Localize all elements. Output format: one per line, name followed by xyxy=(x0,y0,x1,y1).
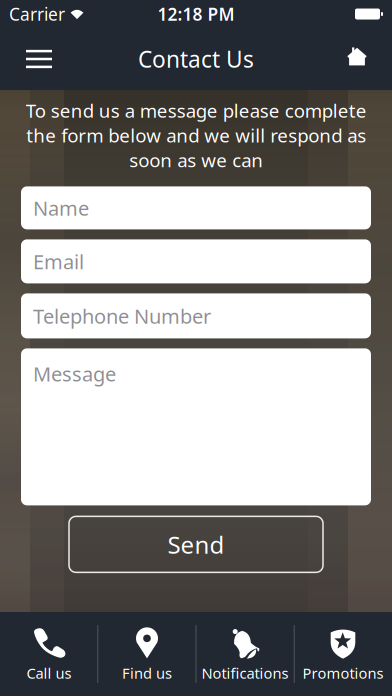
button[interactable]: Send xyxy=(69,516,323,572)
button[interactable]: Find us xyxy=(98,612,196,696)
staticText: Send xyxy=(167,528,224,560)
staticText: Email xyxy=(33,248,84,275)
staticText: Telephone Number xyxy=(33,303,211,329)
staticText: Notifications xyxy=(201,663,288,683)
button[interactable]: Call us xyxy=(0,612,98,696)
button[interactable]: Home xyxy=(331,33,383,85)
button[interactable]: Notifications xyxy=(196,612,294,696)
button[interactable]: Menu xyxy=(9,33,69,85)
staticText: Carrier xyxy=(9,2,65,25)
button[interactable]: Promotions xyxy=(294,612,392,696)
staticText: 12:18 PM xyxy=(157,2,234,25)
button[interactable]: Email xyxy=(21,239,371,283)
staticText: Promotions xyxy=(302,663,383,683)
staticText: To send us a message please complete the… xyxy=(25,98,366,172)
staticText: Call us xyxy=(26,663,71,683)
button[interactable]: Telephone Number xyxy=(21,293,371,338)
staticText: Name xyxy=(33,195,89,221)
button[interactable]: Name xyxy=(21,186,371,229)
button[interactable]: Message xyxy=(21,348,371,505)
staticText: Contact Us xyxy=(138,44,254,74)
staticText: Message xyxy=(33,360,116,387)
staticText: Find us xyxy=(122,663,172,683)
